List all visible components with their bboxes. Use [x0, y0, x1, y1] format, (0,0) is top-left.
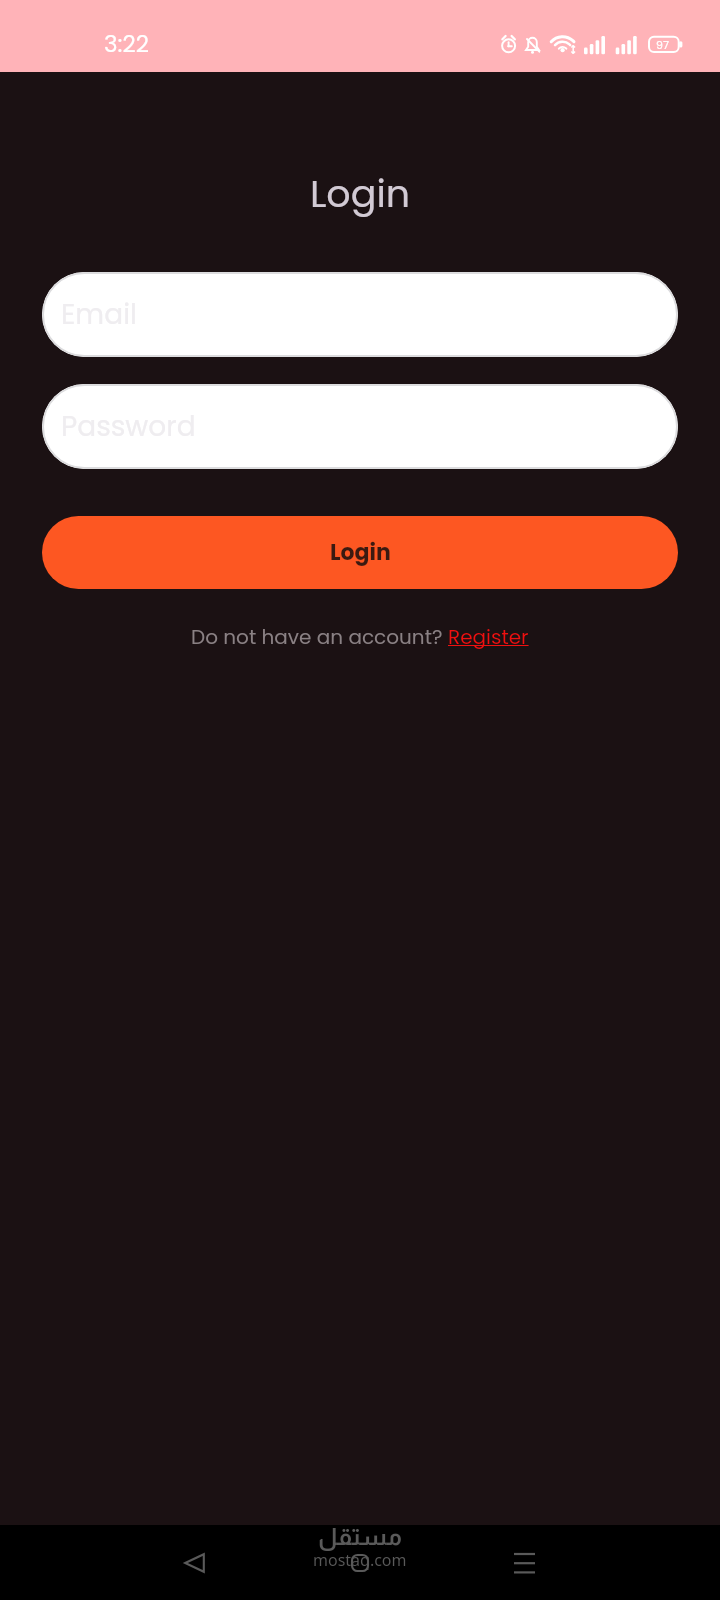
- staticText: 97: [656, 37, 669, 52]
- button[interactable]: Back: [134, 1525, 254, 1600]
- button[interactable]: Register: [448, 623, 529, 651]
- staticText: Register: [448, 623, 529, 651]
- button[interactable]: Menu: [464, 1525, 584, 1600]
- button[interactable]: Home: [300, 1525, 420, 1600]
- staticText: 3:22: [104, 28, 149, 60]
- staticText: مستقل: [318, 1523, 403, 1550]
- staticText: Login: [0, 167, 720, 220]
- staticText: mostaq.com: [313, 1549, 407, 1571]
- staticText: Password: [61, 407, 196, 446]
- staticText: Do not have an account?: [191, 623, 448, 651]
- button[interactable]: Login: [42, 516, 678, 589]
- button[interactable]: Password: [42, 384, 678, 469]
- button[interactable]: Email: [42, 272, 678, 357]
- staticText: Login: [330, 537, 391, 568]
- staticText: Email: [61, 295, 137, 334]
